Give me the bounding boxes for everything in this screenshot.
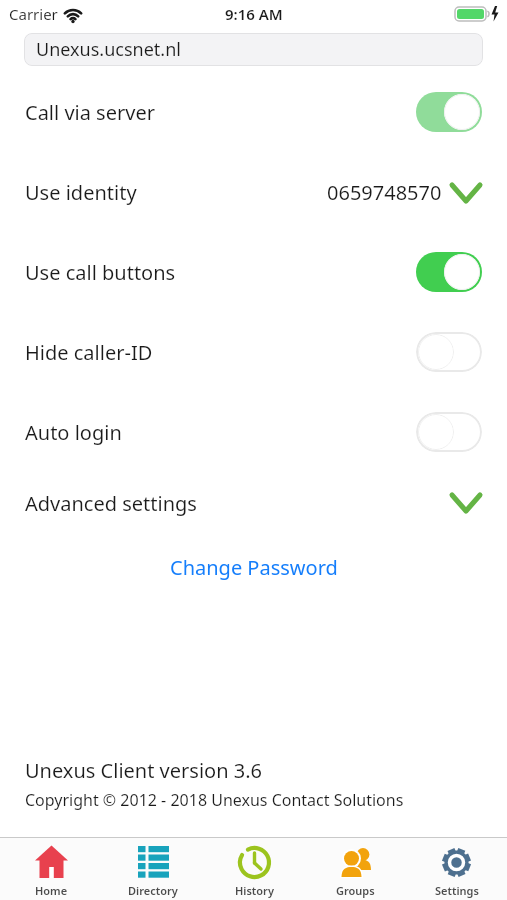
staticText: 9:16 AM <box>225 4 283 24</box>
staticText: Use identity <box>25 179 137 206</box>
button[interactable]: Use call buttons <box>25 232 482 312</box>
staticText: Directory <box>128 883 178 898</box>
button[interactable]: Advanced settings <box>25 463 482 543</box>
button[interactable]: Hide caller-ID <box>25 312 482 392</box>
button[interactable]: Directory <box>102 838 204 900</box>
staticText: Call via server <box>25 99 155 126</box>
staticText: Home <box>35 883 68 898</box>
button[interactable]: History <box>204 838 305 900</box>
staticText: Change Password <box>170 554 338 581</box>
staticText: Settings <box>435 883 479 898</box>
staticText: Unexus.ucsnet.nl <box>36 37 181 62</box>
staticText: Use call buttons <box>25 259 176 286</box>
button[interactable]: Call via server <box>25 72 482 152</box>
button[interactable]: Change Password <box>0 550 507 584</box>
button[interactable] <box>416 252 482 292</box>
button[interactable] <box>416 92 482 132</box>
button[interactable] <box>416 332 482 372</box>
button[interactable]: Home <box>0 838 102 900</box>
staticText: Carrier <box>9 4 58 24</box>
button[interactable]: Settings <box>406 838 507 900</box>
button[interactable]: Use identity <box>25 152 482 232</box>
staticText: History <box>235 883 274 898</box>
button[interactable]: Unexus.ucsnet.nl <box>24 33 483 66</box>
staticText: Auto login <box>25 419 122 446</box>
staticText: Copyright © 2012 - 2018 Unexus Contact S… <box>25 789 404 811</box>
staticText: Advanced settings <box>25 490 197 517</box>
staticText: Hide caller-ID <box>25 339 153 366</box>
staticText: 0659748570 <box>327 179 442 206</box>
button[interactable]: Auto login <box>25 392 482 472</box>
staticText: Unexus Client version 3.6 <box>25 757 262 784</box>
staticText: Groups <box>336 883 375 898</box>
button[interactable]: Groups <box>305 838 406 900</box>
button[interactable] <box>416 412 482 452</box>
